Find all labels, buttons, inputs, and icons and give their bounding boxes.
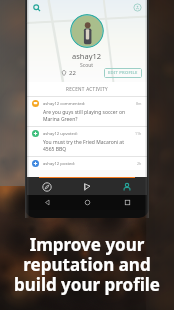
button[interactable]: Home	[67, 195, 107, 210]
staticText: Improve your reputation and build your p…	[6, 233, 168, 296]
staticText: EDIT PROFILE	[108, 70, 138, 76]
button[interactable]: Profile	[107, 178, 147, 195]
staticText: ashay12 posted:	[43, 161, 137, 167]
button[interactable]: ashay12 upvoted:	[27, 127, 147, 156]
staticText: You must try the Fried Macaroni at 4565 …	[43, 139, 124, 153]
staticText: Scout	[80, 62, 94, 69]
button[interactable]: Discover	[67, 178, 107, 195]
button[interactable]: Explore	[27, 178, 67, 195]
button[interactable]: Recents	[107, 195, 147, 210]
staticText: 11h	[135, 131, 142, 136]
button[interactable]: Badges	[132, 2, 143, 13]
staticText: ashay12	[72, 51, 102, 61]
staticText: 8m	[136, 101, 142, 106]
button[interactable]: ashay12 commented:	[27, 97, 147, 126]
staticText: Are you guys still playing soccer on Mar…	[43, 109, 126, 123]
staticText: RECENT ACTIVITY	[66, 86, 108, 92]
staticText: 22	[69, 69, 76, 77]
button[interactable]: Search	[31, 2, 42, 13]
button[interactable]: Profile photo	[70, 14, 104, 48]
staticText: 2h	[137, 161, 142, 166]
staticText: ashay12 commented:	[43, 101, 136, 107]
staticText: ashay12 upvoted:	[43, 131, 135, 137]
button[interactable]: EDIT PROFILE	[104, 68, 142, 78]
button[interactable]: Back	[27, 195, 67, 210]
button[interactable]: ashay12 posted:	[27, 157, 147, 170]
